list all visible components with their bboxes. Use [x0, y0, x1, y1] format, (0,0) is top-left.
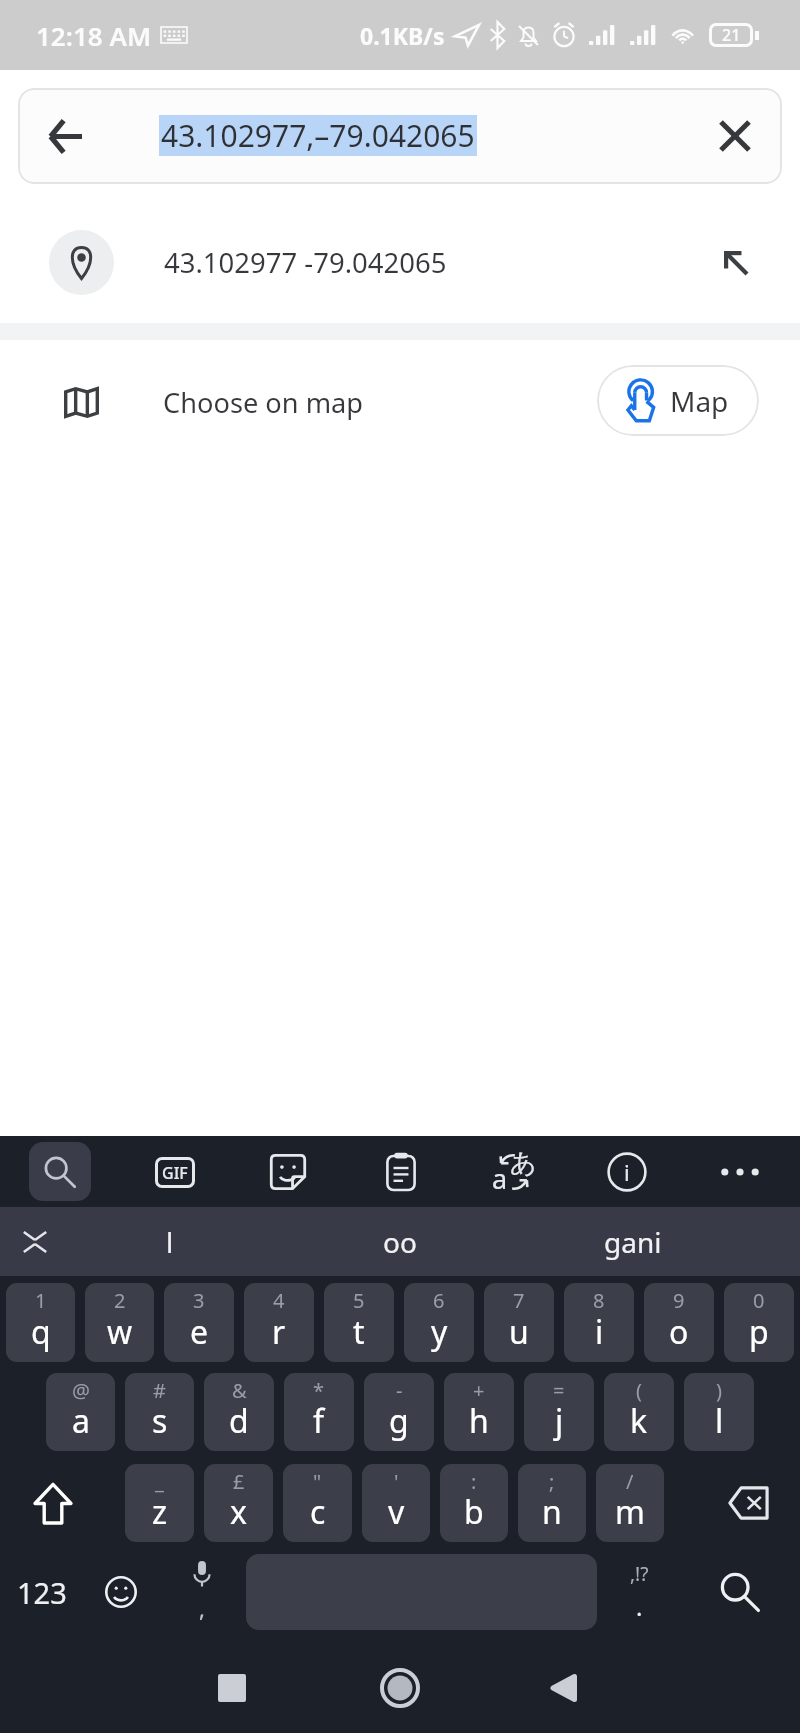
button[interactable]: Search	[29, 1142, 91, 1201]
button[interactable]: +	[444, 1373, 514, 1451]
staticText: x	[230, 1490, 247, 1534]
button[interactable]: _	[125, 1464, 194, 1542]
staticText: 5	[353, 1287, 365, 1314]
staticText: Choose on map	[163, 384, 364, 421]
staticText: 2	[114, 1287, 126, 1314]
staticText: _	[155, 1468, 164, 1495]
button[interactable]: Back	[519, 1642, 611, 1733]
staticText: '	[394, 1468, 399, 1495]
staticText: oo	[383, 1223, 417, 1261]
staticText: 8	[593, 1287, 605, 1314]
staticText: c	[310, 1490, 326, 1534]
staticText: t	[353, 1310, 365, 1354]
staticText: 3	[193, 1287, 205, 1314]
button[interactable]: oo	[270, 1207, 529, 1276]
staticText: q	[31, 1310, 51, 1354]
button[interactable]: 7	[484, 1283, 554, 1362]
button[interactable]: 1	[6, 1283, 75, 1362]
button[interactable]: £	[204, 1464, 273, 1542]
staticText: y	[431, 1310, 448, 1354]
button[interactable]: #	[125, 1373, 194, 1451]
button[interactable]: 8	[564, 1283, 634, 1362]
staticText: Map	[670, 382, 729, 420]
button[interactable]: Home	[354, 1642, 446, 1733]
button[interactable]: Shift	[1, 1464, 120, 1542]
staticText: 9	[673, 1287, 685, 1314]
button[interactable]: info	[598, 1143, 656, 1201]
staticText: 43.102977 -79.042065	[164, 244, 447, 281]
staticText: k	[630, 1399, 648, 1443]
staticText: ,!?	[630, 1561, 649, 1587]
button[interactable]: more	[711, 1143, 769, 1201]
staticText: u	[509, 1310, 529, 1354]
staticText: "	[313, 1468, 322, 1495]
button[interactable]: '	[362, 1464, 430, 1542]
button[interactable]: Emoji	[83, 1554, 159, 1630]
staticText: *	[313, 1377, 325, 1404]
staticText: z	[152, 1490, 168, 1534]
button[interactable]: 0	[724, 1283, 794, 1362]
staticText: :	[471, 1468, 477, 1495]
staticText: o	[669, 1310, 689, 1354]
button[interactable]: Choose on map	[0, 340, 800, 464]
button[interactable]: Back	[18, 88, 112, 184]
button[interactable]: Clear	[688, 88, 782, 184]
staticText: a	[72, 1399, 90, 1443]
button[interactable]: 4	[244, 1283, 314, 1362]
staticText: )	[716, 1377, 722, 1404]
button[interactable]: -	[364, 1373, 434, 1451]
staticText: (	[636, 1377, 642, 1404]
button[interactable]: @	[46, 1373, 115, 1451]
staticText: m	[615, 1490, 645, 1534]
button[interactable]: 2	[85, 1283, 154, 1362]
staticText: v	[388, 1490, 405, 1534]
button[interactable]: Expand toolbar	[0, 1207, 70, 1276]
button[interactable]: 3	[164, 1283, 234, 1362]
button[interactable]: (	[604, 1373, 674, 1451]
staticText: l	[166, 1223, 174, 1261]
button[interactable]: 6	[404, 1283, 474, 1362]
button[interactable]: &	[204, 1373, 274, 1451]
button[interactable]: :	[440, 1464, 508, 1542]
button[interactable]: 5	[324, 1283, 394, 1362]
button[interactable]: l	[70, 1207, 270, 1276]
staticText: 43.102977,–79.042065	[161, 115, 475, 156]
button[interactable]: clipboard	[372, 1143, 430, 1201]
button[interactable]: )	[684, 1373, 754, 1451]
staticText: /	[626, 1468, 634, 1495]
staticText: 0	[753, 1287, 765, 1314]
button[interactable]: Voice input	[180, 1561, 224, 1623]
staticText: 6	[433, 1287, 445, 1314]
staticText: +	[473, 1377, 485, 1404]
button[interactable]: ,!?	[616, 1561, 662, 1623]
button[interactable]: translate	[485, 1143, 543, 1201]
staticText: d	[229, 1399, 249, 1443]
button[interactable]: 123	[0, 1554, 83, 1630]
button[interactable]: ;	[518, 1464, 586, 1542]
staticText: gani	[604, 1223, 662, 1261]
staticText: 7	[513, 1287, 525, 1314]
button[interactable]: Search	[680, 1554, 800, 1630]
button[interactable]: /	[596, 1464, 664, 1542]
button[interactable]: sticker	[259, 1143, 317, 1201]
staticText: 1	[35, 1287, 47, 1314]
button[interactable]: 43.102977 -79.042065	[0, 184, 800, 323]
button[interactable]: Use this result	[702, 229, 768, 295]
button[interactable]: *	[284, 1373, 354, 1451]
button[interactable]: gani	[529, 1207, 737, 1276]
staticText: h	[469, 1399, 489, 1443]
staticText: GIF	[162, 1162, 188, 1184]
button[interactable]: 9	[644, 1283, 714, 1362]
button[interactable]: Map	[597, 365, 759, 436]
staticText: 123	[17, 1573, 67, 1612]
staticText: f	[313, 1399, 325, 1443]
staticText: #	[153, 1377, 166, 1404]
staticText: g	[389, 1399, 409, 1443]
button[interactable]: GIF	[146, 1143, 204, 1201]
button[interactable]: =	[524, 1373, 594, 1451]
staticText: b	[464, 1490, 484, 1534]
button[interactable]: Backspace	[669, 1464, 799, 1542]
button[interactable]: Recents	[186, 1642, 278, 1733]
button[interactable]: "	[283, 1464, 352, 1542]
